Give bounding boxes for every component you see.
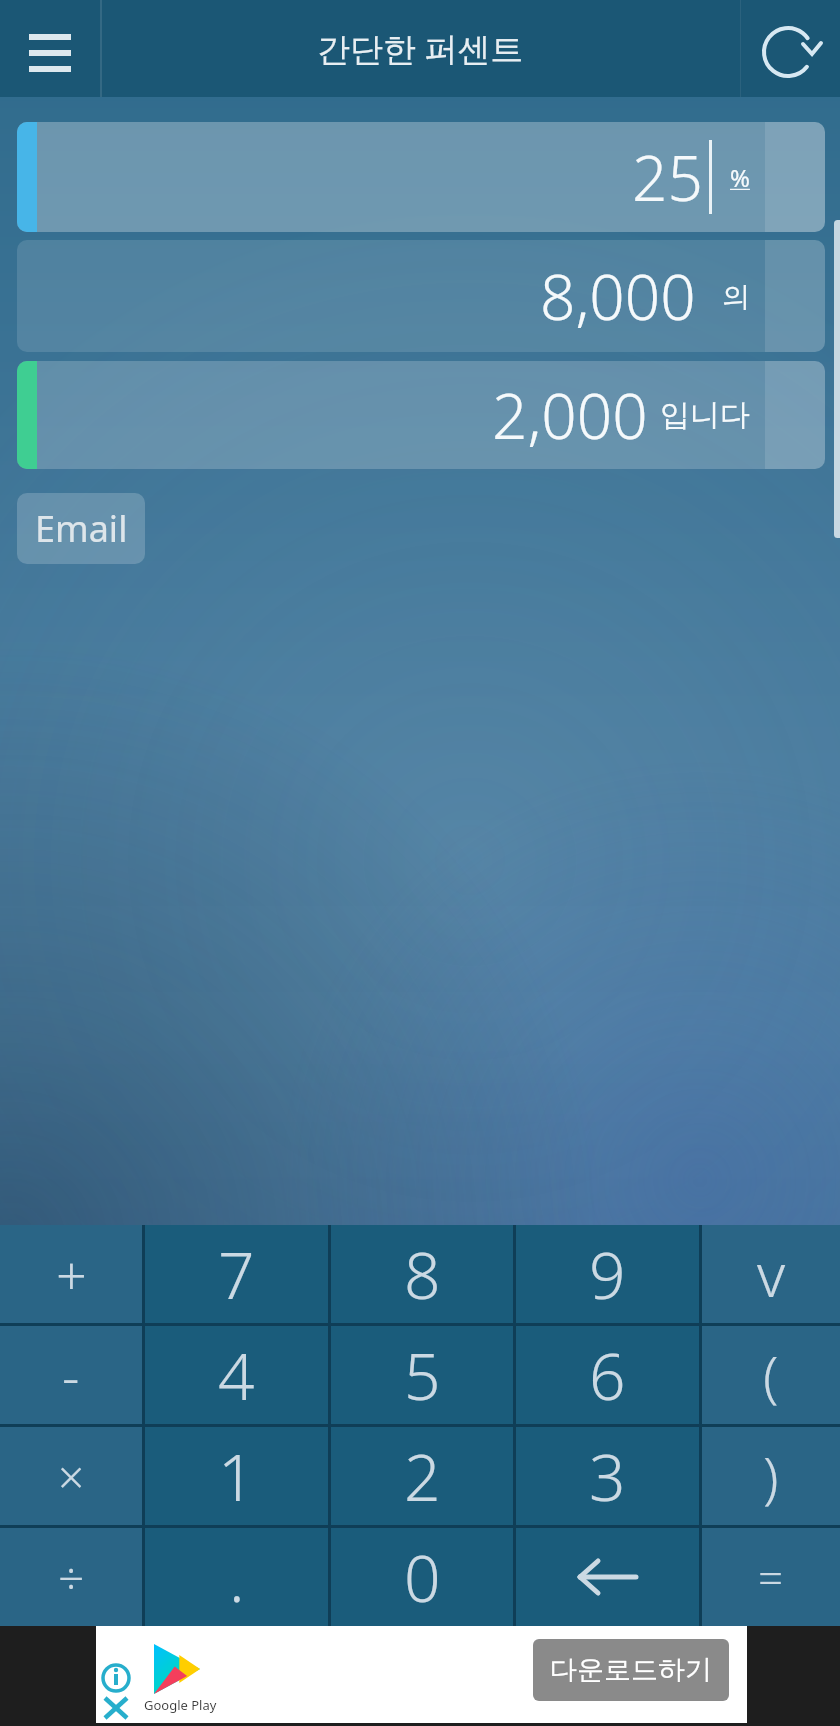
button[interactable] [0, 0, 100, 97]
staticText: - [62, 1338, 80, 1412]
staticText: 8 [404, 1231, 441, 1318]
staticText: 입니다 [660, 396, 750, 434]
staticText: 다운로드하기 [550, 1653, 712, 1687]
staticText: ) [763, 1438, 779, 1514]
button[interactable]: . [145, 1528, 328, 1626]
button[interactable]: 2 [331, 1427, 513, 1525]
staticText: 2 [404, 1433, 441, 1520]
button[interactable]: = [702, 1528, 840, 1626]
button[interactable]: 1 [145, 1427, 328, 1525]
staticText: Email [35, 504, 128, 553]
staticText: 25 [632, 135, 703, 219]
button[interactable]: 8,000 [17, 240, 825, 352]
staticText: 3 [589, 1433, 626, 1520]
staticText: 0 [404, 1534, 441, 1621]
button[interactable]: ÷ [0, 1528, 142, 1626]
staticText: 1 [218, 1433, 255, 1520]
button[interactable]: ) [702, 1427, 840, 1525]
staticText: 7 [218, 1231, 255, 1318]
button[interactable]: 9 [516, 1225, 699, 1323]
staticText: 2,000 [492, 373, 648, 457]
button[interactable]: 5 [331, 1326, 513, 1424]
staticText: 의 [722, 279, 750, 314]
staticText: = [758, 1547, 784, 1607]
staticText: . [229, 1534, 245, 1621]
button[interactable]: 0 [331, 1528, 513, 1626]
button[interactable]: 6 [516, 1326, 699, 1424]
staticText: Google Play [144, 1696, 217, 1714]
staticText: × [58, 1445, 85, 1508]
button[interactable]: 다운로드하기 [533, 1639, 729, 1701]
staticText: 간단한 퍼센트 [317, 26, 524, 71]
button[interactable]: × [0, 1427, 142, 1525]
button[interactable]: 8 [331, 1225, 513, 1323]
button[interactable]: 25 [17, 122, 825, 232]
button[interactable]: - [0, 1326, 142, 1424]
button[interactable]: Email [17, 493, 145, 564]
staticText: ÷ [58, 1546, 85, 1609]
button[interactable]: + [0, 1225, 142, 1323]
staticText: 8,000 [540, 254, 696, 338]
button[interactable] [756, 16, 828, 88]
button[interactable]: ( [702, 1326, 840, 1424]
staticText: % [730, 161, 750, 194]
staticText: ( [763, 1337, 779, 1413]
staticText: 6 [589, 1332, 626, 1419]
button[interactable]: 3 [516, 1427, 699, 1525]
staticText: 9 [589, 1231, 626, 1318]
button[interactable]: Google Play [96, 1626, 747, 1723]
staticText: v [757, 1233, 786, 1315]
staticText: 5 [404, 1332, 441, 1419]
button[interactable]: 2,000 [17, 361, 825, 469]
button[interactable] [516, 1528, 699, 1626]
button[interactable]: 7 [145, 1225, 328, 1323]
staticText: + [56, 1237, 87, 1311]
button[interactable]: v [702, 1225, 840, 1323]
staticText: 4 [218, 1332, 255, 1419]
button[interactable]: 4 [145, 1326, 328, 1424]
